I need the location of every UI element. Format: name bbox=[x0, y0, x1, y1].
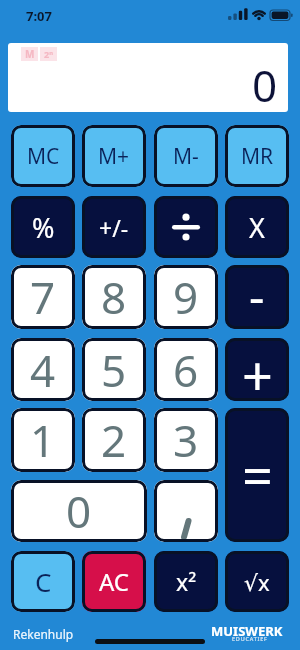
staticText: C bbox=[35, 564, 52, 599]
staticText: % bbox=[32, 209, 55, 246]
button[interactable]: 1 bbox=[11, 408, 75, 472]
staticText: 7:07 bbox=[26, 7, 52, 25]
staticText: 4 bbox=[30, 340, 56, 400]
staticText: 3 bbox=[173, 410, 199, 470]
staticText: MR bbox=[241, 142, 274, 171]
staticText: = bbox=[242, 438, 273, 512]
button[interactable]: 9 bbox=[154, 265, 218, 329]
button[interactable]: 2 bbox=[82, 408, 146, 472]
staticText: M+ bbox=[98, 142, 130, 171]
button[interactable]: √x bbox=[225, 551, 289, 612]
button[interactable]: 0 bbox=[11, 480, 147, 542]
staticText: - bbox=[249, 265, 265, 327]
button[interactable]: 8 bbox=[82, 265, 146, 329]
staticText: AC bbox=[99, 565, 130, 598]
button[interactable]: MR bbox=[225, 125, 289, 187]
staticText: √x bbox=[244, 567, 270, 597]
button[interactable]: - bbox=[225, 265, 289, 329]
button[interactable]: + bbox=[225, 338, 289, 401]
button[interactable]: +/- bbox=[82, 196, 146, 258]
staticText: +/- bbox=[99, 212, 129, 243]
staticText: 8 bbox=[101, 267, 127, 327]
button[interactable]: % bbox=[11, 196, 75, 258]
staticText: M bbox=[25, 47, 35, 61]
staticText: 1 bbox=[30, 410, 56, 470]
staticText: + bbox=[242, 338, 273, 401]
button[interactable]: MC bbox=[11, 125, 75, 187]
button[interactable]: Rekenhulp bbox=[13, 626, 74, 642]
staticText: X bbox=[249, 209, 265, 246]
button[interactable]: 3 bbox=[154, 408, 218, 472]
staticText: MUISWERK bbox=[211, 622, 283, 640]
staticText: 7 bbox=[30, 267, 56, 327]
staticText: 2 bbox=[101, 410, 127, 470]
staticText: x² bbox=[176, 566, 197, 597]
button[interactable] bbox=[154, 480, 218, 542]
staticText: 9 bbox=[173, 267, 199, 327]
button[interactable]: M- bbox=[154, 125, 218, 187]
button[interactable]: 6 bbox=[154, 338, 218, 401]
staticText: 5 bbox=[101, 340, 127, 400]
button[interactable]: AC bbox=[82, 551, 146, 612]
button[interactable]: x² bbox=[154, 551, 218, 612]
staticText: 0 bbox=[66, 481, 92, 541]
button[interactable]: X bbox=[225, 196, 289, 258]
staticText: EDUCATIEF bbox=[232, 635, 268, 642]
staticText: Rekenhulp bbox=[13, 626, 74, 642]
staticText: 0 bbox=[252, 55, 278, 112]
staticText: M- bbox=[173, 142, 199, 171]
button[interactable]: M+ bbox=[82, 125, 146, 187]
staticText: MC bbox=[27, 142, 60, 171]
button[interactable]: 4 bbox=[11, 338, 75, 401]
staticText: 6 bbox=[173, 340, 199, 400]
button[interactable]: C bbox=[11, 551, 75, 612]
button[interactable]: 5 bbox=[82, 338, 146, 401]
button[interactable] bbox=[154, 196, 218, 258]
button[interactable]: 7 bbox=[11, 265, 75, 329]
button[interactable]: = bbox=[225, 408, 289, 542]
staticText: 2ⁿ bbox=[44, 48, 53, 60]
